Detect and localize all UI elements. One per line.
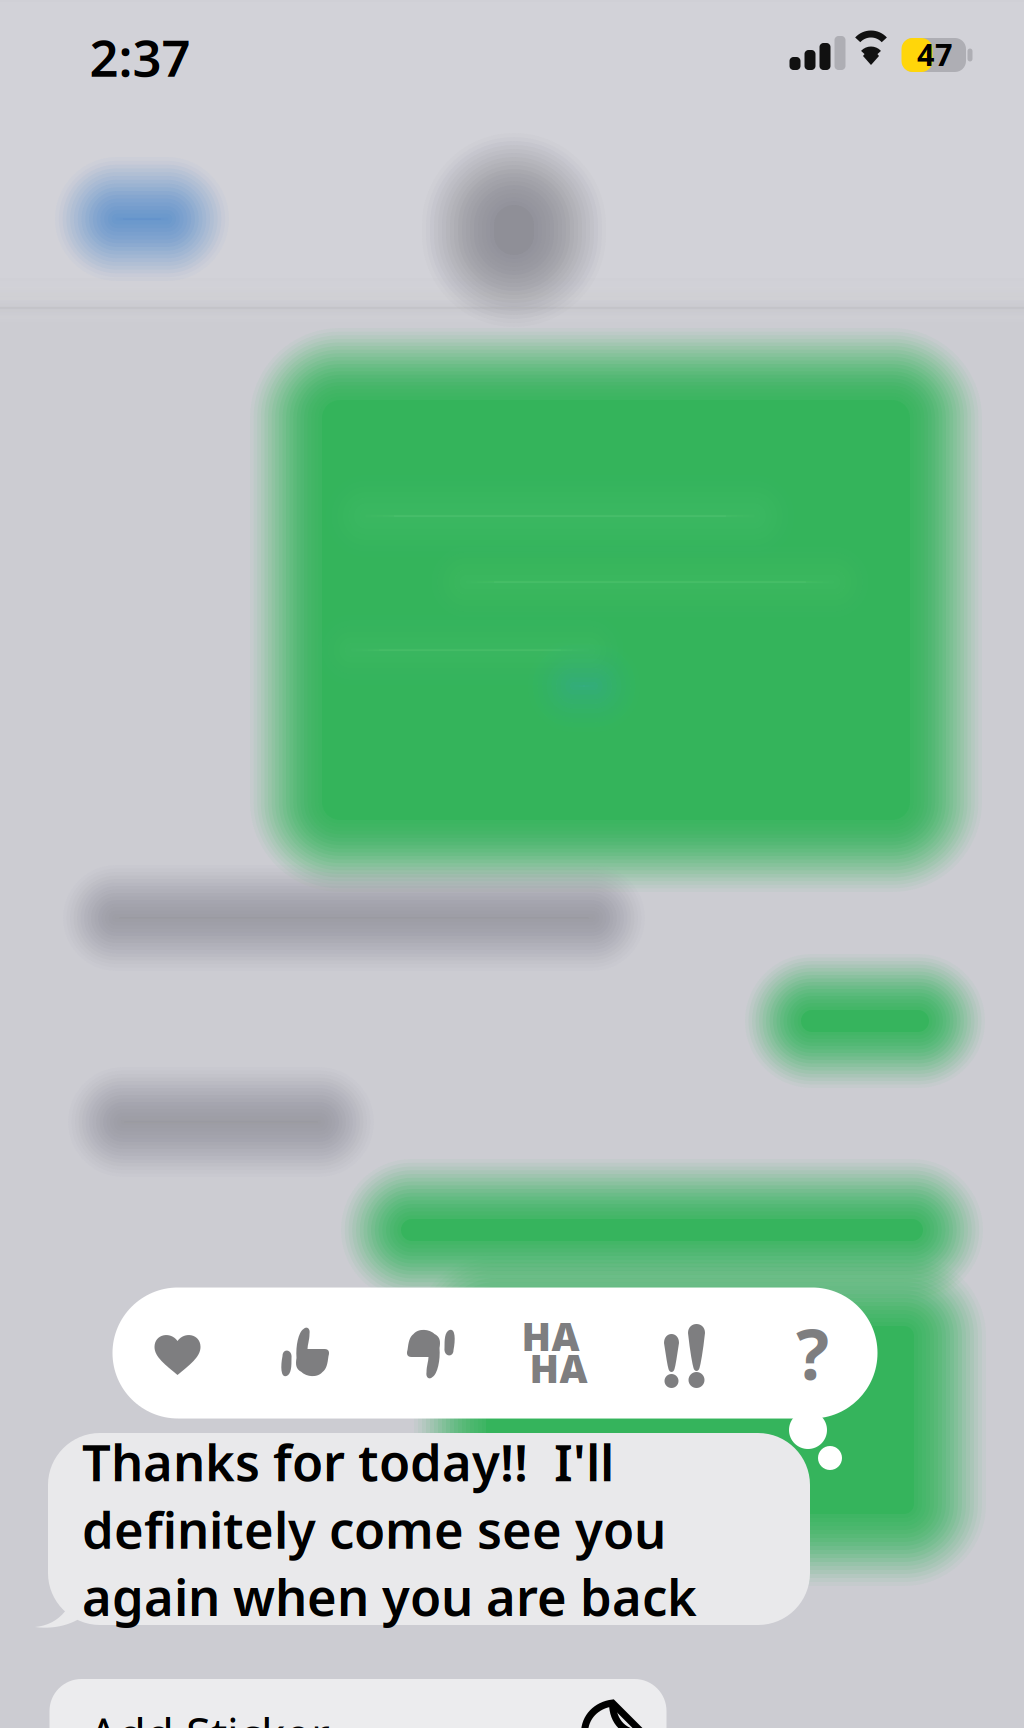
staticText: Add Sticker — [89, 1704, 330, 1728]
button[interactable]: Love — [114, 1288, 241, 1418]
staticText: ? — [796, 1307, 829, 1399]
button[interactable]: Question — [749, 1288, 876, 1418]
staticText: 2:37 — [89, 23, 190, 91]
button[interactable]: Add Sticker — [49, 1679, 666, 1728]
button[interactable]: Dislike — [368, 1288, 495, 1418]
button[interactable]: Emphasize — [622, 1288, 749, 1418]
button[interactable]: Laugh — [495, 1288, 622, 1418]
staticText: HA — [529, 1342, 587, 1394]
button[interactable]: Like — [241, 1288, 368, 1418]
staticText: Thanks for today!! I'll definitely come … — [82, 1428, 697, 1630]
staticText: HA — [521, 1310, 579, 1362]
staticText: 47 — [917, 34, 953, 74]
